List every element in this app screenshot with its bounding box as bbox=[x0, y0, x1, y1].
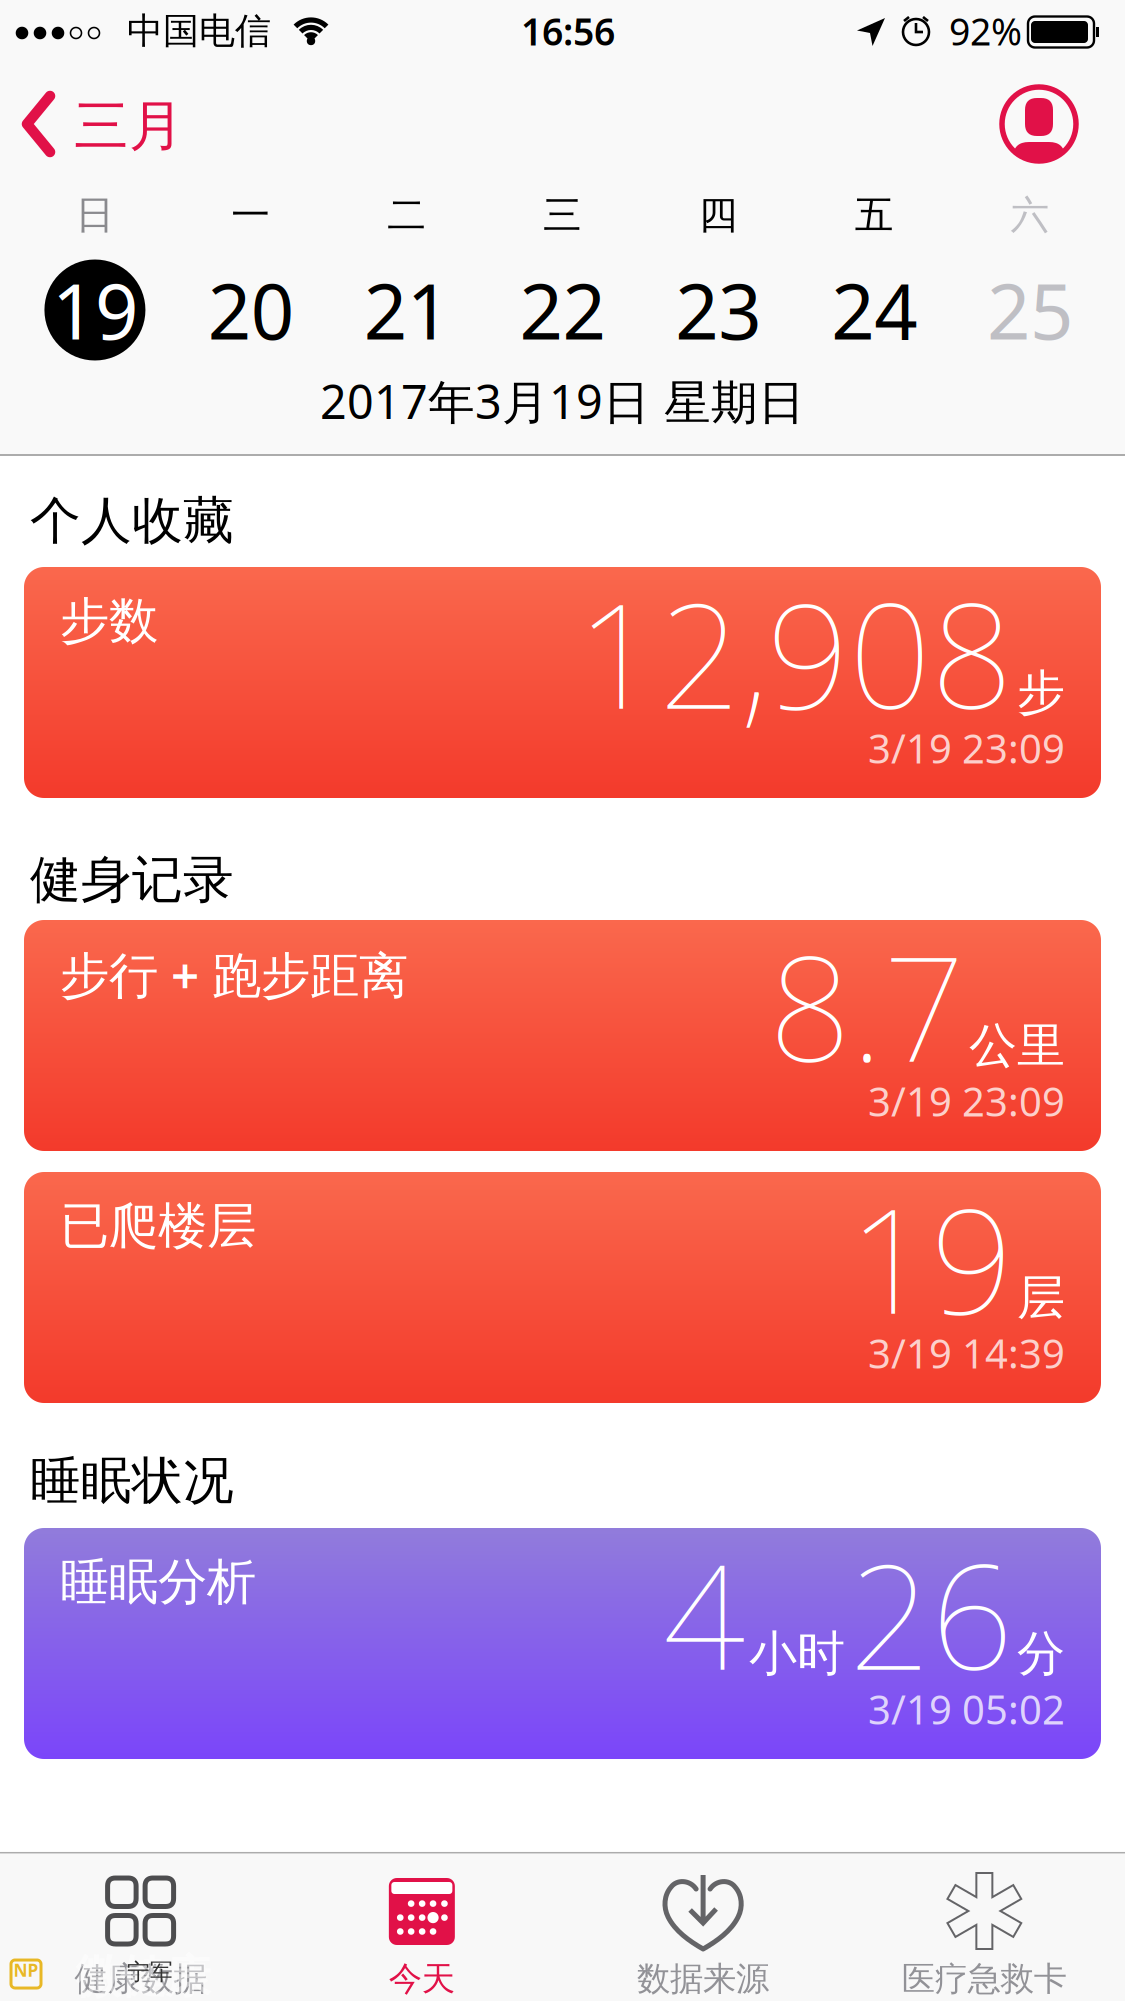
staticText: 步 bbox=[1017, 663, 1065, 722]
button[interactable]: 3月25日 bbox=[952, 254, 1108, 366]
staticText: 4 bbox=[663, 1518, 745, 1710]
button[interactable]: 已爬楼层 bbox=[24, 1172, 1101, 1403]
button[interactable]: 今天 bbox=[281, 1852, 562, 2001]
staticText: 步行 + 跑步距离 bbox=[60, 941, 408, 1007]
staticText: 健康数据 bbox=[75, 1958, 207, 1999]
staticText: 20 bbox=[208, 259, 294, 360]
staticText: 26 bbox=[849, 1518, 1013, 1710]
staticText: 22 bbox=[519, 259, 605, 360]
staticText: 3/19 05:02 bbox=[868, 1682, 1065, 1735]
staticText: 2017年3月19日 星期日 bbox=[320, 370, 805, 432]
staticText: 数据来源 bbox=[637, 1958, 769, 1999]
staticText: 睡眠分析 bbox=[60, 1552, 256, 1612]
staticText: 日 bbox=[75, 191, 114, 239]
staticText: 92% bbox=[949, 6, 1022, 56]
staticText: 微健康 bbox=[75, 1949, 210, 2001]
staticText: 六 bbox=[1011, 191, 1050, 239]
button[interactable]: 3月21日 bbox=[329, 254, 485, 366]
staticText: 3/19 23:09 bbox=[868, 1074, 1065, 1127]
staticText: 已爬楼层 bbox=[60, 1196, 256, 1256]
staticText: 8.7 bbox=[769, 910, 965, 1102]
button[interactable]: 3月24日 bbox=[796, 254, 952, 366]
staticText: 步数 bbox=[60, 591, 158, 651]
staticText: 24 bbox=[831, 259, 917, 360]
staticText: 中国电信 bbox=[127, 9, 271, 53]
staticText: 一 bbox=[231, 191, 270, 239]
staticText: 12,908 bbox=[577, 557, 1013, 749]
staticText: 五 bbox=[855, 191, 894, 239]
staticText: 19 bbox=[849, 1162, 1013, 1354]
staticText: 四 bbox=[699, 191, 738, 239]
button[interactable]: 3月23日 bbox=[640, 254, 796, 366]
staticText: 19 bbox=[52, 259, 138, 360]
button[interactable]: 个人资料 bbox=[1001, 86, 1077, 162]
button[interactable]: 步行 + 跑步距离 bbox=[24, 920, 1101, 1151]
staticText: 层 bbox=[1017, 1268, 1065, 1327]
button[interactable]: 睡眠分析 bbox=[24, 1528, 1101, 1759]
staticText: 分 bbox=[1017, 1624, 1065, 1683]
staticText: 23 bbox=[675, 259, 761, 360]
staticText: 二 bbox=[387, 191, 426, 239]
staticText: 16:56 bbox=[521, 6, 615, 56]
button[interactable]: 医疗急救卡 bbox=[844, 1852, 1125, 2001]
staticText: 21 bbox=[364, 259, 450, 360]
staticText: 25 bbox=[987, 259, 1073, 360]
button[interactable]: 数据来源 bbox=[563, 1852, 844, 2001]
button[interactable]: 3月20日 bbox=[173, 254, 329, 366]
button[interactable]: 健康数据 bbox=[0, 1852, 281, 2001]
button[interactable]: 返回三月 bbox=[24, 92, 184, 159]
staticText: 医疗急救卡 bbox=[902, 1958, 1067, 1999]
staticText: NP bbox=[13, 1958, 38, 1981]
staticText: 公里 bbox=[969, 1016, 1065, 1075]
staticText: 睡眠状况 bbox=[30, 1450, 234, 1512]
button[interactable]: 3月19日 bbox=[17, 254, 173, 366]
staticText: 今天 bbox=[389, 1958, 455, 1999]
staticText: 宁军 bbox=[127, 1958, 173, 1986]
staticText: 健身记录 bbox=[30, 849, 234, 911]
button[interactable]: 步数 bbox=[24, 567, 1101, 798]
staticText: 三 bbox=[543, 191, 582, 239]
staticText: 三月 bbox=[74, 92, 184, 159]
staticText: 小时 bbox=[749, 1624, 845, 1683]
button[interactable]: 3月22日 bbox=[485, 254, 640, 366]
staticText: 3/19 23:09 bbox=[868, 721, 1065, 774]
staticText: 3/19 14:39 bbox=[868, 1326, 1065, 1379]
staticText: 个人收藏 bbox=[30, 490, 234, 552]
